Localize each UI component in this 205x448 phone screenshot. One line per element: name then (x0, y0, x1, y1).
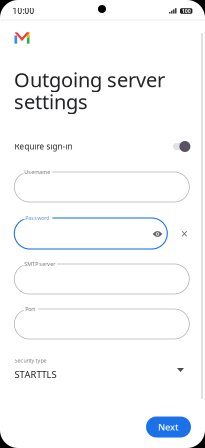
staticText: Username (24, 168, 50, 175)
staticText: Outgoing server (14, 66, 165, 93)
button[interactable]: Require sign-in (0, 134, 205, 158)
button[interactable]: Clear password (176, 225, 192, 241)
button[interactable]: Username (14, 172, 189, 202)
staticText: 100 (182, 7, 191, 15)
staticText: Password (25, 214, 49, 221)
staticText: Security type (14, 357, 46, 364)
staticText: × (181, 225, 188, 241)
button[interactable]: SMTP server (14, 264, 189, 294)
staticText: Require sign-in (15, 141, 73, 152)
staticText: SMTP server (24, 260, 55, 267)
staticText: Port (25, 305, 35, 312)
staticText: Next (158, 421, 179, 433)
button[interactable]: Next (146, 416, 191, 437)
staticText: 10:00 (12, 6, 34, 16)
staticText: settings (14, 88, 88, 115)
button[interactable]: Port (14, 309, 189, 339)
button[interactable]: Password (14, 218, 167, 249)
staticText: STARTTLS (14, 368, 56, 380)
button[interactable]: Security type (0, 353, 205, 389)
